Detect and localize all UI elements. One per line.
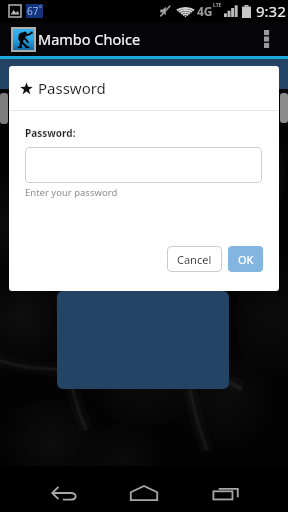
button[interactable]: Cancel	[167, 246, 222, 272]
staticText: LTE	[213, 2, 222, 9]
staticText: Password	[38, 78, 106, 98]
staticText: °	[39, 4, 42, 14]
button[interactable]: Recent apps	[194, 474, 258, 512]
staticText: OK	[238, 252, 254, 267]
button[interactable]	[25, 147, 262, 183]
staticText: 4G	[197, 3, 213, 19]
staticText: 67	[27, 4, 39, 18]
staticText: Cancel	[177, 252, 212, 267]
button[interactable]: Back	[32, 474, 96, 512]
button[interactable]: Home	[112, 474, 176, 512]
staticText: Mambo Choice	[38, 29, 141, 49]
staticText: Password:	[25, 126, 76, 140]
staticText: 9:32	[256, 1, 286, 21]
button[interactable]: OK	[228, 246, 263, 272]
button[interactable]: More options	[255, 22, 279, 56]
staticText: Enter your password	[25, 186, 118, 199]
